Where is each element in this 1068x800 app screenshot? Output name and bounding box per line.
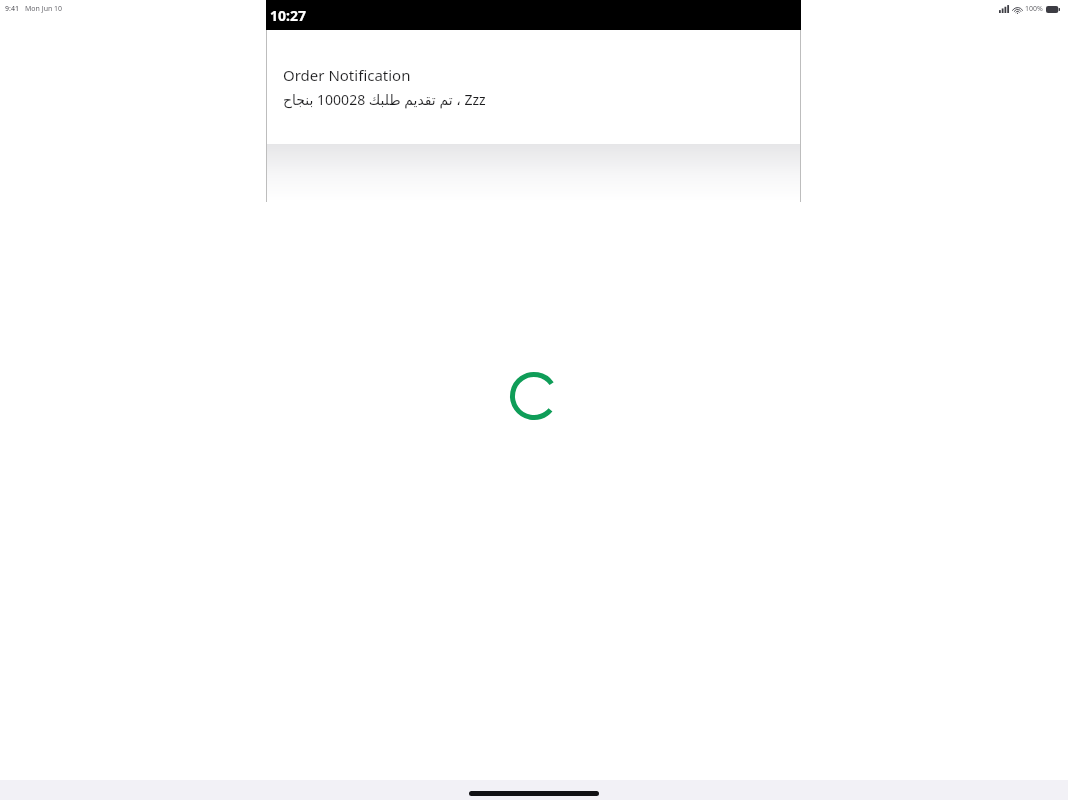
staticText: 10:27 [270, 6, 306, 25]
other: Loading [510, 372, 558, 420]
staticText: 9:41 [5, 4, 19, 14]
button[interactable]: Order Notification [266, 30, 801, 144]
staticText: Mon Jun 10 [25, 4, 63, 14]
staticText: 100% [1025, 4, 1043, 14]
staticText: تم تقديم طلبك 100028 بنجاح ، Zzz [283, 90, 486, 109]
staticText: Order Notification [283, 65, 411, 85]
